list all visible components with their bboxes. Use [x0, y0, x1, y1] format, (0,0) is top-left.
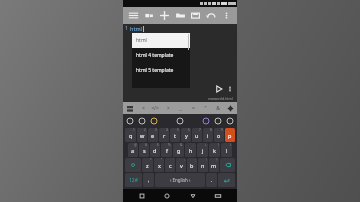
staticText: u: [195, 132, 199, 139]
button[interactable]: 8: [203, 128, 213, 142]
button[interactable]: ‹ English ›: [155, 173, 205, 187]
button[interactable]: 5: [170, 128, 180, 142]
button[interactable]: Hide keyboard: [212, 190, 224, 202]
staticText: (: [218, 143, 219, 147]
staticText: w: [140, 132, 145, 139]
staticText: m: [211, 162, 217, 169]
button[interactable]: Menu: [127, 9, 140, 22]
button[interactable]: 3: [148, 128, 158, 142]
button[interactable]: 9: [214, 128, 224, 142]
button[interactable]: Back: [187, 190, 199, 202]
button[interactable]: ;: [187, 158, 197, 172]
button[interactable]: Editor options: [225, 84, 235, 94]
button[interactable]: $: [150, 143, 160, 157]
staticText: ): [230, 143, 231, 147]
button[interactable]: <: [139, 103, 147, 114]
button[interactable]: &: [173, 143, 184, 157]
button[interactable]: #: [139, 143, 149, 157]
staticText: ;: [195, 158, 196, 162]
button[interactable]: More options: [220, 9, 233, 22]
button[interactable]: 1: [125, 128, 136, 142]
staticText: 6: [188, 128, 190, 132]
button[interactable]: Shift: [125, 158, 141, 172]
button[interactable]: Clipboard: [126, 117, 134, 125]
button[interactable]: ): [221, 143, 232, 157]
staticText: html 5 template: [136, 67, 174, 74]
button[interactable]: *: [142, 158, 153, 172]
button[interactable]: 12#: [125, 173, 142, 187]
button[interactable]: Search: [176, 117, 184, 125]
button[interactable]: Themes: [202, 117, 210, 125]
staticText: html: [136, 37, 147, 44]
staticText: l: [226, 147, 228, 154]
button[interactable]: -: [185, 143, 196, 157]
staticText: t: [174, 132, 176, 139]
button[interactable]: html 5 template: [132, 63, 190, 78]
button[interactable]: .: [206, 173, 217, 187]
staticText: 2: [144, 128, 146, 132]
button[interactable]: +: [197, 143, 208, 157]
staticText: $: [157, 143, 159, 147]
staticText: a: [131, 147, 135, 154]
button[interactable]: ": [154, 158, 164, 172]
button[interactable]: 6: [181, 128, 191, 142]
button[interactable]: Open folder: [174, 9, 187, 22]
button[interactable]: p: [225, 128, 235, 142]
staticText: j: [202, 147, 204, 154]
button[interactable]: 2: [137, 128, 147, 142]
staticText: =: [192, 105, 195, 112]
button[interactable]: Enter: [218, 173, 235, 187]
button[interactable]: Settings: [226, 117, 234, 125]
button[interactable]: >: [164, 103, 172, 114]
staticText: >: [167, 105, 170, 112]
button[interactable]: Undo: [205, 9, 218, 22]
button[interactable]: html 4 template: [132, 48, 190, 63]
button[interactable]: _: [176, 103, 184, 114]
button[interactable]: ": [201, 103, 209, 114]
button[interactable]: !: [198, 158, 208, 172]
button[interactable]: &: [214, 103, 222, 114]
button[interactable]: 7: [192, 128, 202, 142]
button[interactable]: Voice input: [138, 117, 146, 125]
staticText: i: [207, 132, 209, 139]
button[interactable]: Recent files: [143, 9, 156, 22]
staticText: y: [185, 132, 188, 139]
button[interactable]: Run: [213, 83, 225, 95]
staticText: k: [213, 147, 216, 154]
staticText: -: [193, 143, 195, 147]
button[interactable]: 4: [159, 128, 169, 142]
button[interactable]: :: [176, 158, 186, 172]
button[interactable]: (: [209, 143, 220, 157]
button[interactable]: Snippets: [125, 104, 134, 113]
button[interactable]: Recents: [136, 190, 148, 202]
button[interactable]: %: [161, 143, 172, 157]
button[interactable]: Stickers: [150, 117, 158, 125]
button[interactable]: @: [128, 143, 138, 157]
button[interactable]: ': [165, 158, 175, 172]
staticText: r: [163, 132, 166, 139]
staticText: 1: [125, 25, 128, 32]
button[interactable]: </>: [151, 103, 159, 114]
staticText: v: [180, 162, 183, 169]
button[interactable]: Home: [161, 190, 173, 202]
staticText: .: [211, 177, 213, 184]
staticText: ': [173, 158, 174, 162]
staticText: html 4 template: [136, 52, 174, 59]
staticText: 7: [199, 128, 201, 132]
button[interactable]: ,: [143, 173, 154, 187]
button[interactable]: Translate: [214, 117, 222, 125]
staticText: 8: [210, 128, 212, 132]
staticText: @: [134, 143, 137, 147]
button[interactable]: Save: [189, 9, 202, 22]
button[interactable]: New file: [158, 9, 171, 22]
button[interactable]: Move cursor: [226, 104, 235, 113]
staticText: 1: [133, 128, 135, 132]
button[interactable]: Backspace: [220, 158, 235, 172]
staticText: ": [161, 158, 163, 162]
button[interactable]: html: [132, 33, 190, 48]
staticText: 3: [155, 128, 157, 132]
staticText: !: [206, 158, 207, 162]
button[interactable]: =: [189, 103, 197, 114]
staticText: _: [179, 105, 182, 112]
button[interactable]: ?: [209, 158, 219, 172]
